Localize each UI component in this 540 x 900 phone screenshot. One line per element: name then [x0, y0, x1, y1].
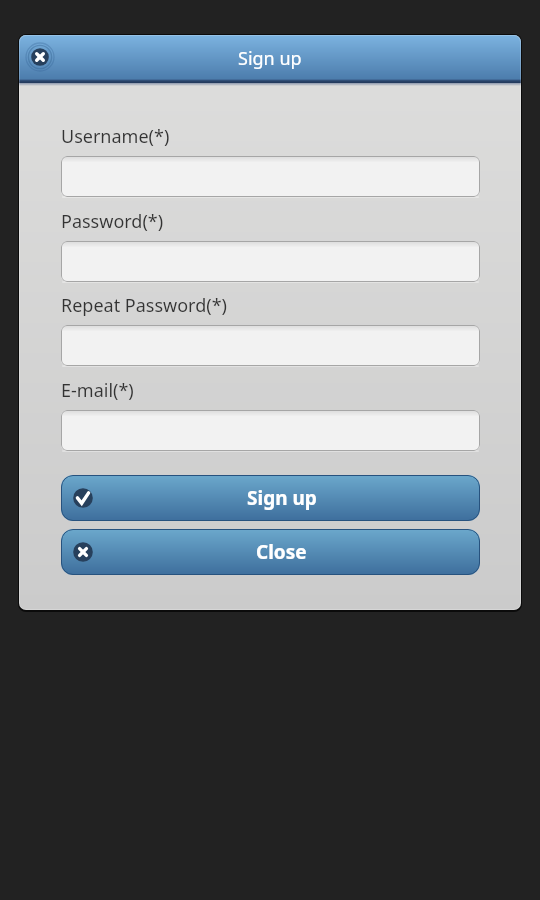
button[interactable] — [61, 241, 480, 282]
staticText: Repeat Password(*) — [61, 293, 227, 318]
button[interactable]: Close dialog — [25, 42, 55, 72]
button[interactable] — [61, 325, 480, 366]
staticText: Close — [256, 539, 307, 565]
staticText: Username(*) — [61, 124, 170, 149]
button[interactable] — [61, 410, 480, 451]
button[interactable]: Close — [61, 529, 480, 575]
staticText: Sign up — [238, 46, 302, 71]
button[interactable]: Sign up — [61, 475, 480, 521]
staticText: Password(*) — [61, 209, 164, 234]
button[interactable] — [61, 156, 480, 197]
staticText: E-mail(*) — [61, 378, 134, 403]
staticText: Sign up — [247, 485, 317, 511]
